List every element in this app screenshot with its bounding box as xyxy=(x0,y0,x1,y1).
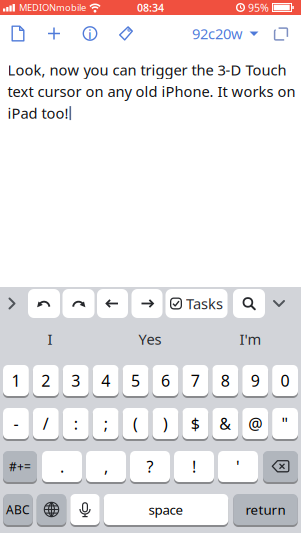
staticText: ! xyxy=(192,456,196,477)
staticText: @ xyxy=(248,413,262,434)
button[interactable]: ! xyxy=(174,451,214,483)
staticText: " xyxy=(282,413,289,434)
staticText: ; xyxy=(104,413,108,434)
staticText: ABC xyxy=(6,501,30,517)
button[interactable]: Next keyboard xyxy=(37,494,66,526)
staticText: / xyxy=(43,413,49,434)
button[interactable]: & xyxy=(212,408,238,440)
button[interactable]: ( xyxy=(123,408,148,440)
button[interactable]: / xyxy=(33,408,59,440)
button[interactable]: 8 xyxy=(212,365,238,397)
button[interactable]: . xyxy=(42,451,82,483)
staticText: Yes xyxy=(138,329,161,349)
button[interactable]: Dismiss keyboard xyxy=(267,289,291,318)
button[interactable]: #+= xyxy=(3,451,37,483)
button[interactable]: Move cursor right xyxy=(131,289,162,318)
button[interactable]: Draft list xyxy=(192,24,259,43)
staticText: 2 xyxy=(41,370,50,391)
staticText: iPad too! xyxy=(7,103,68,123)
button[interactable]: : xyxy=(63,408,89,440)
staticText: 5 xyxy=(131,370,140,391)
button[interactable]: 4 xyxy=(93,365,119,397)
staticText: 4 xyxy=(101,370,110,391)
staticText: i xyxy=(88,25,92,43)
staticText: 95% xyxy=(248,0,269,15)
button[interactable]: 5 xyxy=(123,365,148,397)
staticText: #+= xyxy=(9,458,31,474)
button[interactable]: Info xyxy=(72,15,108,52)
button[interactable]: Move cursor left xyxy=(97,289,128,318)
button[interactable]: ' xyxy=(218,451,258,483)
button[interactable]: Hide toolbar xyxy=(0,289,24,318)
staticText: ' xyxy=(236,456,240,477)
staticText: ) xyxy=(163,413,168,434)
button[interactable]: ; xyxy=(93,408,119,440)
button[interactable]: $ xyxy=(182,408,208,440)
button[interactable]: , xyxy=(86,451,126,483)
button[interactable]: 9 xyxy=(242,365,268,397)
staticText: MEDIONmobile xyxy=(19,1,86,14)
button[interactable]: " xyxy=(272,408,298,440)
staticText: return xyxy=(245,501,285,518)
staticText: 08:34 xyxy=(137,0,164,15)
button[interactable]: Search xyxy=(233,289,265,318)
staticText: ( xyxy=(133,413,138,434)
staticText: 7 xyxy=(191,370,200,391)
staticText: Look, now you can trigger the 3-D Touch xyxy=(7,60,286,79)
staticText: space xyxy=(148,501,183,518)
staticText: 92c20w xyxy=(192,24,243,43)
staticText: 3 xyxy=(71,370,80,391)
staticText: : xyxy=(74,413,78,434)
button[interactable]: 3 xyxy=(63,365,89,397)
button[interactable]: ) xyxy=(152,408,178,440)
button[interactable]: Dictate xyxy=(70,494,100,526)
button[interactable]: Undo xyxy=(28,289,60,318)
staticText: 6 xyxy=(161,370,170,391)
button[interactable]: Yes xyxy=(100,321,200,357)
staticText: - xyxy=(13,413,18,434)
button[interactable]: 6 xyxy=(152,365,178,397)
button[interactable]: New draft xyxy=(0,15,36,52)
button[interactable]: ABC xyxy=(3,494,33,526)
staticText: I xyxy=(47,329,52,349)
button[interactable]: space xyxy=(104,494,228,526)
button[interactable]: 2 xyxy=(33,365,59,397)
staticText: $ xyxy=(191,413,200,434)
button[interactable]: return xyxy=(233,494,298,526)
button[interactable]: Tags xyxy=(108,15,144,52)
button[interactable]: I'm xyxy=(200,321,301,357)
staticText: 8 xyxy=(221,370,230,391)
button[interactable]: @ xyxy=(242,408,268,440)
button[interactable]: Add xyxy=(36,15,72,52)
button[interactable]: I xyxy=(0,321,100,357)
button[interactable]: Delete xyxy=(263,451,298,483)
staticText: I'm xyxy=(239,329,261,349)
staticText: & xyxy=(219,413,231,434)
button[interactable]: Tasks xyxy=(165,289,227,318)
button[interactable]: 0 xyxy=(272,365,298,397)
button[interactable]: 7 xyxy=(182,365,208,397)
staticText: text cursor on any old iPhone. It works … xyxy=(7,82,295,101)
staticText: 0 xyxy=(281,370,290,391)
button[interactable]: 1 xyxy=(3,365,29,397)
staticText: Tasks xyxy=(186,294,223,313)
button[interactable]: ? xyxy=(130,451,170,483)
staticText: 1 xyxy=(11,370,20,391)
button[interactable]: Expand xyxy=(259,25,289,41)
button[interactable]: Redo xyxy=(62,289,94,318)
staticText: . xyxy=(60,456,64,477)
staticText: 9 xyxy=(251,370,260,391)
button[interactable]: - xyxy=(3,408,29,440)
staticText: , xyxy=(104,456,108,477)
staticText: ? xyxy=(146,456,153,477)
